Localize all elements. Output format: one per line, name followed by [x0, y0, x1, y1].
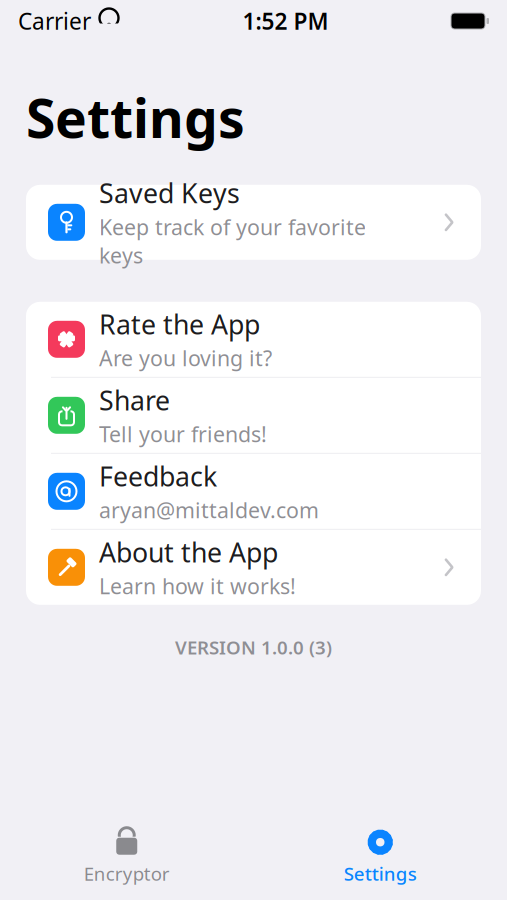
staticText: 1:52 PM: [242, 6, 328, 36]
staticText: Learn how it works!: [99, 572, 296, 600]
staticText: Carrier: [18, 6, 91, 36]
button[interactable]: Saved Keys: [26, 185, 481, 260]
staticText: aryan@mittaldev.com: [99, 496, 319, 524]
staticText: Share: [99, 382, 170, 418]
button[interactable]: Rate the App: [26, 302, 481, 377]
button[interactable]: Encryptor: [0, 828, 253, 886]
staticText: Encryptor: [84, 861, 170, 886]
staticText: Keep track of your favorite keys: [99, 213, 366, 269]
staticText: Tell your friends!: [99, 420, 267, 448]
button[interactable]: Share: [26, 378, 481, 453]
staticText: VERSION 1.0.0 (3): [175, 635, 332, 660]
staticText: Saved Keys: [99, 175, 240, 211]
staticText: Rate the App: [99, 306, 260, 342]
button[interactable]: About the App: [26, 530, 481, 605]
button[interactable]: Settings: [253, 828, 507, 886]
staticText: About the App: [99, 534, 278, 570]
staticText: Are you loving it?: [99, 344, 272, 372]
button[interactable]: Feedback: [26, 454, 481, 529]
staticText: Feedback: [99, 458, 217, 494]
staticText: Settings: [26, 82, 245, 153]
staticText: Settings: [344, 861, 417, 886]
